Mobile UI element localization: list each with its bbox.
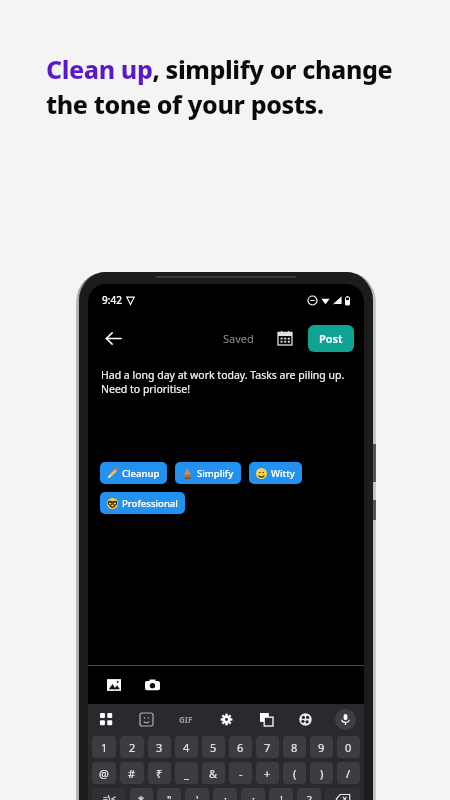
button[interactable]: Saved (219, 327, 258, 350)
staticText: 9 (318, 740, 325, 755)
staticText: 0 (345, 740, 352, 755)
staticText: ' (196, 792, 199, 800)
staticText: ) (320, 766, 324, 781)
staticText: " (167, 792, 172, 800)
staticText: ( (293, 766, 297, 781)
button[interactable]: Translate (256, 709, 277, 730)
staticText: Clean up, simplify or change the tone of… (46, 52, 430, 122)
staticText: Professional (122, 497, 178, 510)
staticText: Simplify (197, 467, 234, 480)
button[interactable]: & (202, 762, 225, 784)
button[interactable]: / (337, 762, 360, 784)
button[interactable]: Apps (96, 709, 117, 730)
button[interactable]: Settings (216, 709, 237, 730)
staticText: ₹ (156, 766, 163, 781)
staticText: 3 (156, 740, 163, 755)
button[interactable]: ! (269, 788, 293, 800)
button[interactable]: Professional (100, 492, 185, 514)
button[interactable]: Back (98, 323, 128, 353)
button[interactable]: Themes (295, 709, 316, 730)
button[interactable]: 9 (310, 736, 333, 758)
button[interactable]: 4 (175, 736, 198, 758)
button[interactable]: ₹ (148, 762, 171, 784)
button[interactable]: ? (297, 788, 321, 800)
button[interactable]: Voice input (335, 709, 356, 730)
staticText: 5 (210, 740, 217, 755)
staticText: ! (280, 792, 283, 800)
button[interactable]: Stickers (136, 709, 157, 730)
staticText: Post (319, 331, 343, 346)
button[interactable]: 6 (229, 736, 252, 758)
staticText: Witty (271, 467, 295, 480)
button[interactable]: ( (283, 762, 306, 784)
button[interactable]: 3 (148, 736, 171, 758)
button[interactable]: 7 (256, 736, 279, 758)
staticText: 9:42 (102, 293, 122, 307)
button[interactable]: Camera (140, 673, 164, 697)
button[interactable]: 0 (337, 736, 360, 758)
staticText: + (264, 766, 271, 781)
staticText: 7 (264, 740, 271, 755)
staticText: GIF (179, 714, 193, 725)
staticText: Had a long day at work today. Tasks are … (101, 368, 345, 396)
button[interactable]: # (120, 762, 144, 784)
staticText: & (209, 766, 218, 781)
button[interactable]: Witty (249, 462, 302, 484)
staticText: - (239, 766, 243, 781)
button[interactable]: Add image (102, 673, 126, 697)
button[interactable]: 2 (120, 736, 144, 758)
button[interactable]: 8 (283, 736, 306, 758)
button[interactable]: =\< (92, 788, 126, 800)
button[interactable]: Post (308, 325, 354, 352)
staticText: Cleanup (122, 467, 160, 480)
staticText: Saved (223, 331, 254, 346)
staticText: 6 (237, 740, 244, 755)
button[interactable]: _ (175, 762, 198, 784)
staticText: @ (99, 766, 109, 781)
button[interactable]: - (229, 762, 252, 784)
staticText: =\< (103, 793, 116, 800)
staticText: 4 (183, 740, 190, 755)
button[interactable]: ; (241, 788, 265, 800)
staticText: _ (184, 766, 189, 781)
button[interactable]: Simplify (175, 462, 241, 484)
button[interactable]: GIF (175, 710, 197, 729)
button[interactable]: Cleanup (100, 462, 167, 484)
button[interactable]: " (157, 788, 181, 800)
staticText: ? (307, 792, 312, 800)
button[interactable]: 5 (202, 736, 225, 758)
staticText: # (128, 766, 136, 781)
button[interactable]: * (130, 788, 153, 800)
staticText: * (138, 792, 145, 800)
button[interactable]: + (256, 762, 279, 784)
staticText: 8 (291, 740, 298, 755)
button[interactable]: ' (185, 788, 209, 800)
staticText: 2 (129, 740, 136, 755)
button[interactable]: 1 (92, 736, 116, 758)
button[interactable]: @ (92, 762, 116, 784)
button[interactable]: Schedule (272, 325, 298, 351)
staticText: : (224, 792, 227, 800)
staticText: 1 (101, 740, 108, 755)
button[interactable]: Backspace (325, 788, 360, 800)
staticText: / (346, 766, 351, 781)
button[interactable]: ) (310, 762, 333, 784)
staticText: ; (252, 792, 255, 800)
button[interactable]: : (213, 788, 237, 800)
